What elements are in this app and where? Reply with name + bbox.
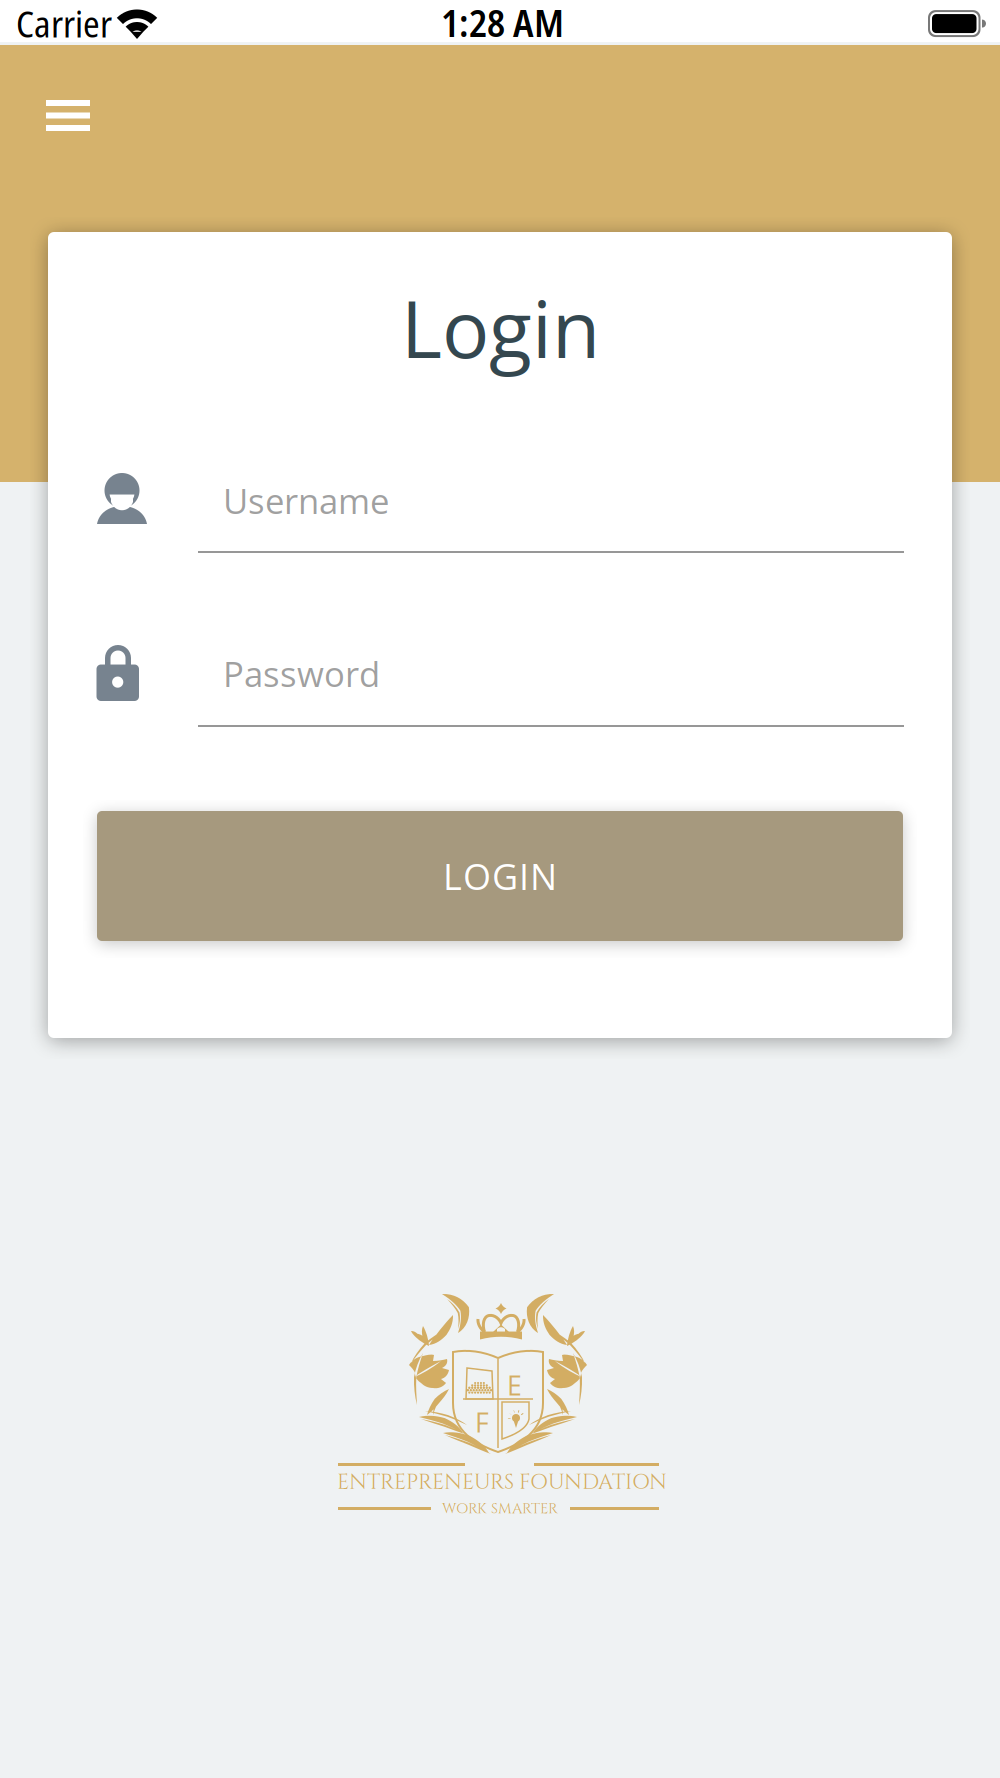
staticText: Username xyxy=(223,477,389,524)
staticText: WORK SMARTER xyxy=(442,1499,558,1519)
staticText: Carrier xyxy=(16,0,112,48)
staticText: Password xyxy=(223,650,380,697)
button[interactable]: Menu xyxy=(22,74,114,157)
staticText: E xyxy=(507,1367,522,1403)
button[interactable]: LOGIN xyxy=(97,811,903,941)
staticText: Login xyxy=(401,274,600,381)
staticText: 1:28 AM xyxy=(441,0,564,48)
staticText: LOGIN xyxy=(443,851,557,900)
staticText: F xyxy=(475,1404,489,1440)
staticText: ENTREPRENEURS FOUNDATION xyxy=(337,1468,667,1497)
